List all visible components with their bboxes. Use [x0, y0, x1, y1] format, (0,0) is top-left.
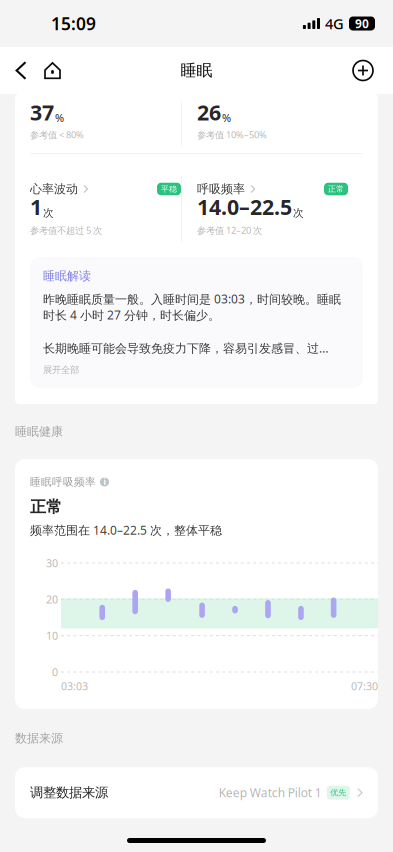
staticText: 4G	[325, 14, 344, 33]
button[interactable]: 呼吸频率	[197, 182, 348, 236]
staticText: 睡眠呼吸频率	[30, 475, 96, 488]
staticText: 睡眠健康	[15, 424, 63, 439]
staticText: 参考值 10%–50%	[197, 128, 267, 141]
staticText: 参考值不超过 5 次	[30, 224, 102, 236]
staticText: 15:09	[51, 12, 96, 35]
button[interactable]: Home	[36, 52, 69, 89]
staticText: 次	[43, 206, 54, 219]
staticText: 长期晚睡可能会导致免疫力下降，容易引发感冒、过…	[43, 340, 328, 356]
staticText: 0	[52, 665, 58, 679]
staticText: 14.0–22.5	[197, 193, 292, 221]
staticText: 睡眠	[180, 61, 212, 80]
staticText: 调整数据来源	[30, 784, 108, 801]
staticText: 优先	[330, 788, 346, 798]
staticText: 03:03	[61, 679, 88, 693]
staticText: 26	[197, 98, 221, 126]
staticText: 呼吸频率	[197, 182, 245, 196]
staticText: %	[55, 111, 64, 125]
staticText: 30	[46, 556, 58, 570]
staticText: 1	[30, 193, 42, 221]
staticText: 次	[293, 206, 304, 219]
staticText: Keep Watch Pilot 1	[219, 785, 322, 801]
staticText: 数据来源	[15, 731, 63, 745]
staticText: 正常	[328, 184, 344, 194]
staticText: 90	[355, 15, 369, 31]
staticText: %	[222, 111, 231, 125]
staticText: 展开全部	[43, 364, 79, 376]
staticText: 37	[30, 98, 54, 126]
staticText: 心率波动	[30, 182, 78, 196]
staticText: 正常	[30, 497, 62, 517]
staticText: 10	[46, 629, 58, 643]
staticText: 参考值 12–20 次	[197, 224, 262, 236]
staticText: 20	[46, 592, 58, 606]
staticText: 07:30	[351, 679, 378, 693]
staticText: i	[103, 477, 105, 487]
staticText: 睡眠解读	[43, 269, 91, 283]
button[interactable]: 心率波动	[30, 182, 181, 236]
staticText: 昨晚睡眠质量一般。入睡时间是 03:03，时间较晚。睡眠时长 4 小时 27 分…	[43, 291, 341, 323]
button[interactable]: 展开全部	[43, 357, 350, 377]
button[interactable]: Add	[342, 51, 384, 89]
staticText: 参考值 < 80%	[30, 128, 84, 141]
staticText: 平稳	[161, 184, 177, 194]
button[interactable]: Back	[6, 51, 36, 90]
button[interactable]: 调整数据来源	[15, 767, 378, 818]
staticText: 频率范围在 14.0–22.5 次，整体平稳	[30, 522, 222, 538]
